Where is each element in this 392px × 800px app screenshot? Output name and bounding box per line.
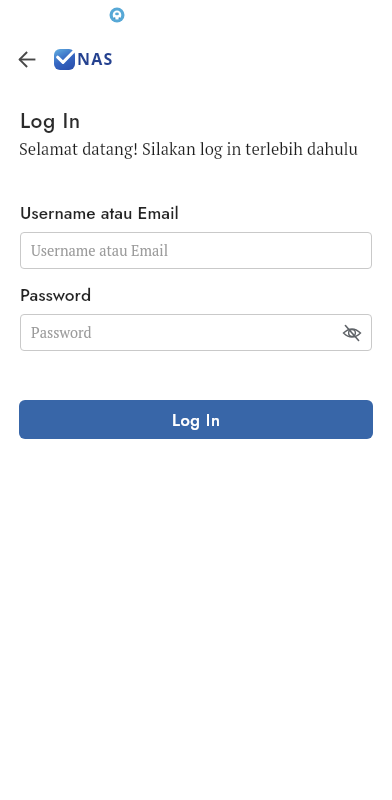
staticText: Log In [172, 408, 221, 432]
button[interactable]: Log In [19, 400, 373, 439]
staticText: Password [20, 282, 92, 307]
staticText: Selamat datang! Silakan log in terlebih … [19, 138, 359, 160]
button[interactable]: Password [20, 314, 372, 351]
staticText: Username atau Email [20, 200, 179, 225]
button[interactable]: NAS [54, 45, 114, 71]
staticText: Username atau Email [31, 241, 169, 260]
staticText: NAS [77, 48, 114, 70]
button[interactable] [7, 39, 47, 79]
button[interactable] [342, 323, 362, 343]
button[interactable]: Username atau Email [20, 232, 372, 269]
staticText: Password [31, 323, 92, 342]
staticText: Log In [20, 106, 81, 136]
